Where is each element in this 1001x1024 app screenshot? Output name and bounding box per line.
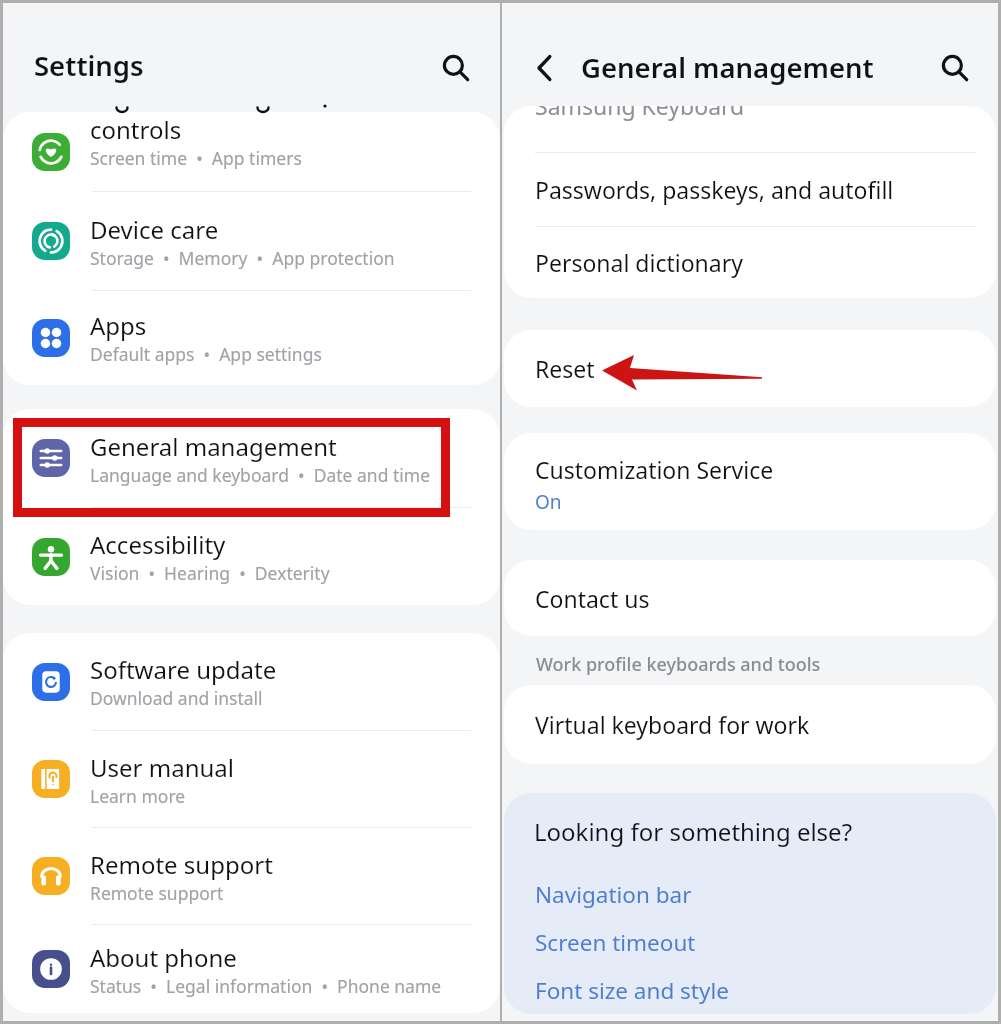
button[interactable]: Font size and style: [504, 966, 996, 1014]
staticText: Passwords, passkeys, and autofill: [535, 174, 894, 205]
button[interactable]: Customization Service: [504, 433, 996, 530]
staticText: Samsung Keyboard: [535, 106, 745, 121]
staticText: Accessibility: [90, 528, 226, 561]
button[interactable]: Navigation bar: [504, 870, 996, 918]
staticText: Download and install: [90, 686, 263, 710]
staticText: Default apps • App settings: [90, 342, 322, 366]
button[interactable]: Passwords, passkeys, and autofill: [504, 153, 996, 226]
staticText: Learn more: [90, 784, 186, 808]
button[interactable]: Contact us: [504, 560, 996, 636]
staticText: On: [535, 489, 562, 515]
button[interactable]: Search: [432, 44, 480, 92]
staticText: Status • Legal information • Phone name: [90, 974, 442, 998]
button[interactable]: Remote support: [3, 828, 500, 924]
staticText: Work profile keyboards and tools: [536, 652, 821, 677]
button[interactable]: Apps: [3, 291, 500, 384]
button[interactable]: Accessibility: [3, 508, 500, 605]
staticText: Virtual keyboard for work: [535, 709, 810, 740]
staticText: General management: [581, 49, 874, 86]
button[interactable]: Search: [931, 44, 979, 92]
staticText: Contact us: [535, 583, 650, 614]
button[interactable]: Back: [522, 45, 568, 91]
staticText: Apps: [90, 309, 147, 342]
staticText: Storage • Memory • App protection: [90, 246, 395, 270]
staticText: User manual: [90, 751, 234, 784]
button[interactable]: controls: [3, 112, 500, 191]
staticText: Settings: [34, 47, 144, 84]
staticText: Reset: [535, 353, 595, 384]
staticText: Navigation bar: [535, 879, 692, 910]
button[interactable]: Device care: [3, 192, 500, 290]
staticText: Vision • Hearing • Dexterity: [90, 561, 330, 585]
staticText: Software update: [90, 653, 277, 686]
button[interactable]: Software update: [3, 633, 500, 730]
button[interactable]: User manual: [3, 731, 500, 827]
staticText: General management: [90, 430, 337, 463]
staticText: Remote support: [90, 848, 273, 881]
staticText: Font size and style: [535, 975, 729, 1006]
button[interactable]: Personal dictionary: [504, 227, 996, 298]
staticText: Customization Service: [535, 454, 774, 485]
staticText: Personal dictionary: [535, 247, 743, 278]
staticText: Language and keyboard • Date and time: [90, 463, 431, 487]
button[interactable]: Virtual keyboard for work: [504, 685, 996, 764]
button[interactable]: Reset: [504, 330, 996, 407]
staticText: Looking for something else?: [534, 815, 853, 848]
staticText: controls: [90, 113, 182, 146]
staticText: Device care: [90, 213, 219, 246]
staticText: About phone: [90, 941, 237, 974]
staticText: Screen time • App timers: [90, 146, 302, 170]
button[interactable]: Screen timeout: [504, 918, 996, 966]
button[interactable]: About phone: [3, 925, 500, 1013]
staticText: Screen timeout: [535, 927, 696, 958]
staticText: Remote support: [90, 881, 224, 905]
button[interactable]: General management: [3, 409, 500, 507]
button[interactable]: Samsung Keyboard: [504, 106, 996, 152]
